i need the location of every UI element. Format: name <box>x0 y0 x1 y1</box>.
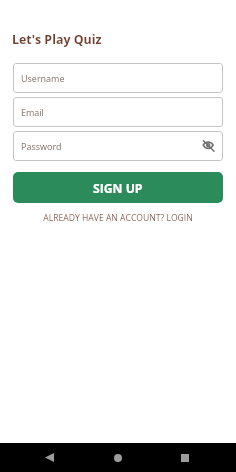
button[interactable]: Recents <box>170 443 200 472</box>
button[interactable]: Back <box>34 443 64 472</box>
staticText: SIGN UP <box>93 180 143 197</box>
button[interactable]: SIGN UP <box>13 172 223 203</box>
staticText: Password <box>21 140 62 152</box>
staticText: ALREADY HAVE AN ACCOUNT? LOGIN <box>43 212 193 224</box>
staticText: Let's Play Quiz <box>12 31 102 48</box>
button[interactable]: Toggle password visibility <box>198 136 218 156</box>
staticText: Username <box>21 72 65 84</box>
button[interactable]: Password <box>13 131 223 161</box>
button[interactable]: Email <box>13 97 223 127</box>
button[interactable]: ALREADY HAVE AN ACCOUNT? LOGIN <box>13 212 223 224</box>
staticText: Email <box>21 106 44 118</box>
button[interactable]: Username <box>13 63 223 93</box>
button[interactable]: Home <box>103 443 133 472</box>
